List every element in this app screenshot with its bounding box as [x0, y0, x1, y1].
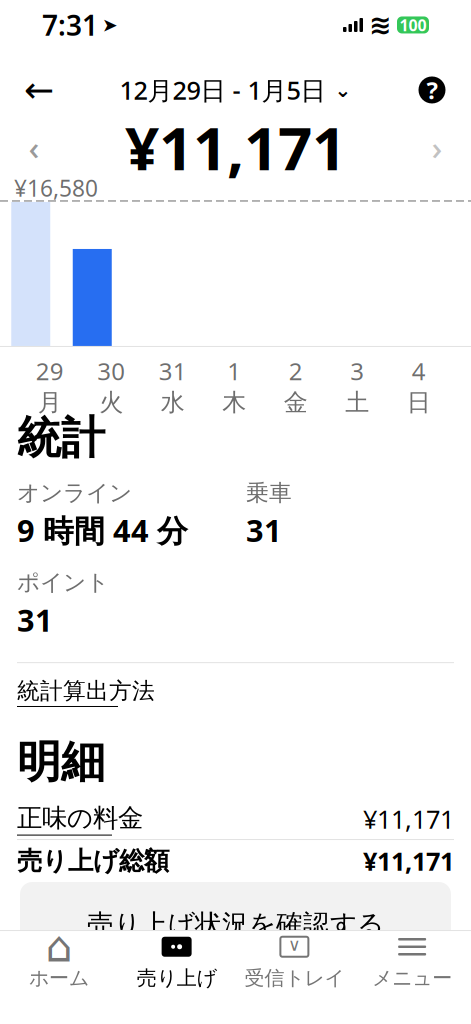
- staticText: ←: [24, 69, 54, 110]
- staticText: 2: [289, 355, 303, 387]
- staticText: 売り上げ状況を確認する: [87, 908, 384, 941]
- staticText: 金: [284, 388, 308, 417]
- staticText: 30: [97, 355, 125, 387]
- staticText: 100: [399, 14, 426, 35]
- staticText: 7:31: [42, 6, 98, 44]
- staticText: ホーム: [29, 966, 89, 990]
- staticText: ¥11,171: [363, 802, 454, 836]
- staticText: 月: [38, 388, 62, 417]
- staticText: ¥11,171: [363, 844, 454, 878]
- staticText: ∨: [288, 935, 301, 955]
- staticText: 売り上げ: [137, 966, 217, 990]
- button[interactable]: ⌂: [0, 931, 118, 993]
- button[interactable]: 12月29日 - 1月5日: [113, 67, 357, 113]
- staticText: オンライン: [17, 479, 132, 507]
- button[interactable]: ヘルプ: [409, 67, 455, 113]
- staticText: ›: [431, 125, 442, 169]
- staticText: ➤: [102, 14, 118, 36]
- button[interactable]: 前の週: [14, 125, 54, 169]
- staticText: メニュー: [372, 966, 452, 990]
- staticText: 31: [246, 510, 282, 551]
- staticText: ¥11,171: [125, 107, 346, 187]
- staticText: 木: [222, 388, 246, 417]
- staticText: 受信トレイ: [244, 966, 344, 990]
- button[interactable]: ∨: [235, 931, 353, 993]
- staticText: 29: [36, 355, 64, 387]
- button[interactable]: 次の週: [417, 125, 457, 169]
- button[interactable]: 売り上げ: [118, 931, 236, 993]
- staticText: 31: [159, 355, 187, 387]
- staticText: ⌄: [334, 79, 351, 101]
- staticText: 正味の料金: [17, 802, 143, 834]
- staticText: ‹: [28, 125, 39, 169]
- staticText: 4: [412, 355, 426, 387]
- staticText: 31: [17, 599, 53, 640]
- staticText: 1: [227, 355, 241, 387]
- staticText: 3: [350, 355, 364, 387]
- button[interactable]: 戻る: [16, 67, 62, 113]
- staticText: ?: [426, 74, 437, 106]
- staticText: 乗車: [246, 479, 292, 507]
- staticText: 9 時間 44 分: [17, 510, 188, 551]
- staticText: 日: [407, 388, 431, 417]
- staticText: 明細: [17, 735, 105, 789]
- staticText: ⌂: [45, 922, 72, 971]
- button[interactable]: 統計算出方法: [17, 663, 155, 707]
- staticText: 統計: [17, 411, 105, 465]
- staticText: 統計算出方法: [17, 677, 155, 705]
- staticText: ≋: [369, 10, 391, 40]
- button[interactable]: 正味の料金: [17, 799, 454, 839]
- button[interactable]: メニュー: [353, 931, 471, 993]
- staticText: 火: [99, 388, 123, 417]
- staticText: 売り上げ総額: [17, 845, 169, 877]
- staticText: 水: [161, 388, 185, 417]
- staticText: ポイント: [17, 569, 109, 596]
- staticText: 12月29日 - 1月5日: [119, 73, 325, 107]
- staticText: 土: [345, 388, 369, 417]
- button[interactable]: 売り上げ状況を確認する: [20, 882, 451, 952]
- staticText: ¥16,580: [14, 173, 98, 203]
